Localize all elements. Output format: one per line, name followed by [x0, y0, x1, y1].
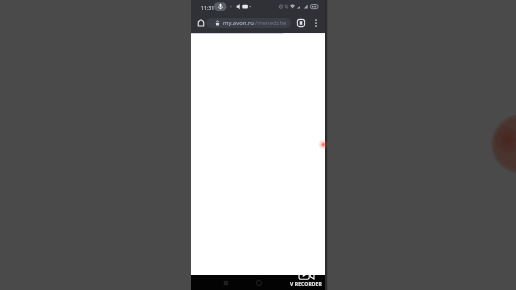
- staticText: my.avon.ru: [223, 19, 255, 27]
- staticText: 11:31: [201, 4, 215, 11]
- staticText: /menedzhe: [255, 19, 287, 27]
- button[interactable]: More options: [311, 18, 321, 28]
- button[interactable]: Home: [254, 278, 264, 288]
- button[interactable]: my.avon.ru: [206, 18, 291, 28]
- button[interactable]: Recents: [221, 278, 231, 288]
- button[interactable]: Home: [195, 17, 207, 29]
- button[interactable]: Tabs: [296, 18, 306, 28]
- staticText: V RECORDER: [290, 281, 322, 288]
